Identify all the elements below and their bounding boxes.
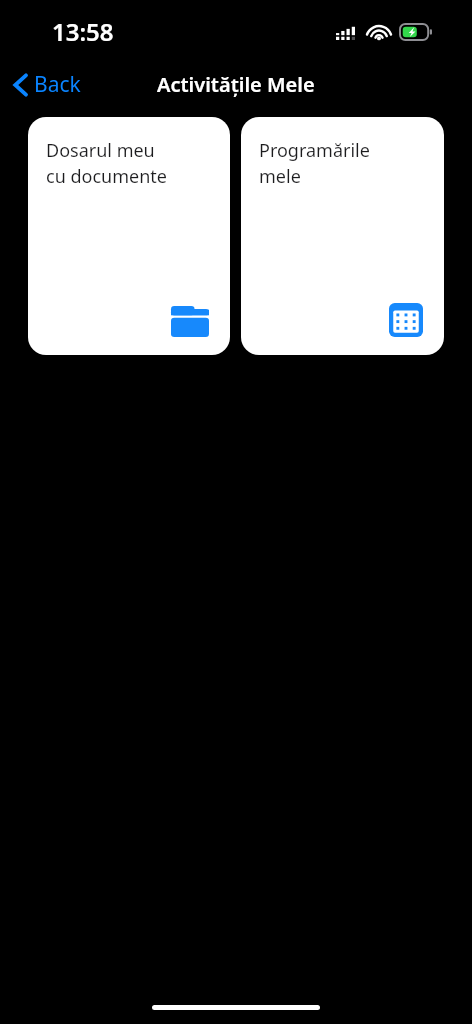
- button[interactable]: Back: [8, 64, 87, 105]
- other: Folder: [171, 306, 209, 337]
- button[interactable]: Programările mele: [241, 117, 444, 355]
- staticText: 13:58: [52, 15, 114, 48]
- staticText: Programările mele: [259, 138, 370, 189]
- button[interactable]: Dosarul meu cu documente: [28, 117, 230, 355]
- staticText: Back: [34, 70, 81, 99]
- staticText: Activitățile Mele: [157, 71, 315, 98]
- staticText: Dosarul meu cu documente: [46, 138, 167, 189]
- other: Calendar: [389, 303, 423, 337]
